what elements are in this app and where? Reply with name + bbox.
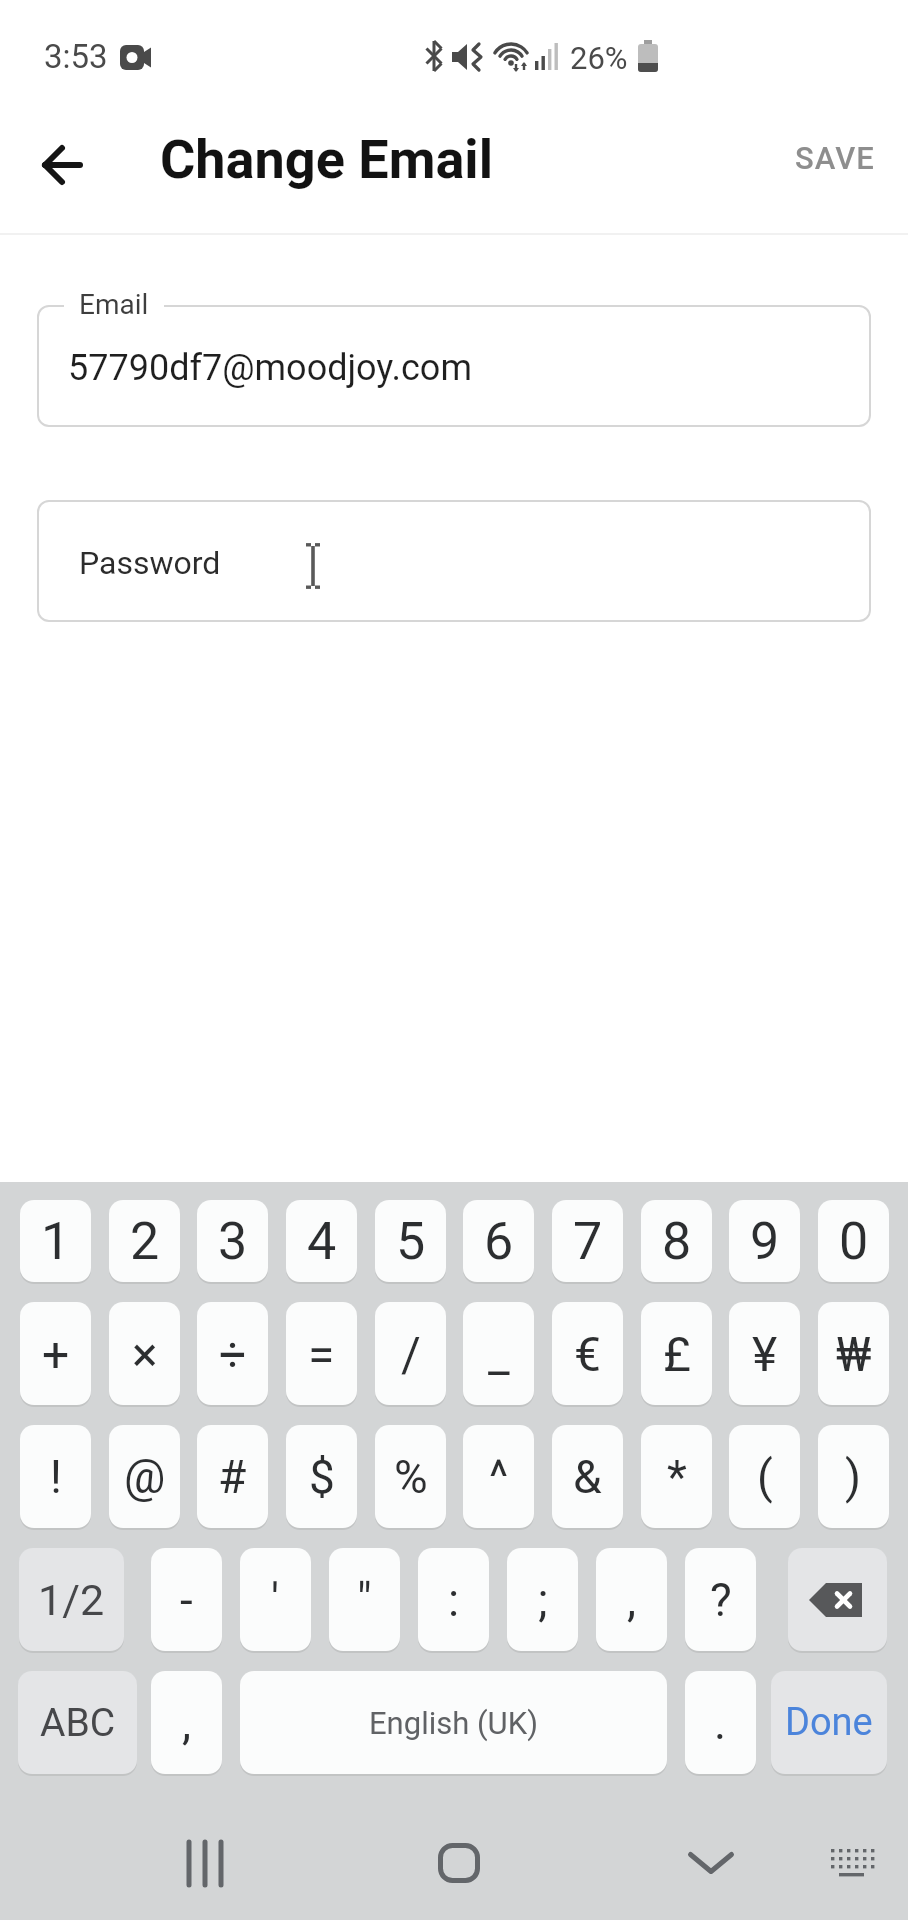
button[interactable] [666, 1830, 756, 1896]
button[interactable]: / [375, 1302, 446, 1405]
button[interactable]: 6 [463, 1200, 534, 1282]
staticText: 5 [396, 1211, 426, 1272]
staticText: # [218, 1450, 247, 1504]
staticText: ) [845, 1450, 862, 1504]
staticText: € [574, 1326, 601, 1382]
staticText: $ [309, 1450, 335, 1504]
button[interactable]: ? [685, 1548, 756, 1651]
button[interactable]: ¥ [729, 1302, 800, 1405]
button[interactable] [788, 1548, 887, 1651]
staticText: , [182, 1696, 192, 1750]
button[interactable]: , [596, 1548, 667, 1651]
staticText: English (UK) [369, 1705, 538, 1741]
button[interactable]: 2 [109, 1200, 180, 1282]
staticText: . [714, 1696, 727, 1750]
staticText: 57790df7@moodjoy.com [68, 347, 472, 389]
button[interactable]: % [375, 1425, 446, 1528]
staticText: Email [79, 288, 149, 321]
staticText: 9 [750, 1211, 780, 1272]
staticText: ( [757, 1450, 773, 1504]
button[interactable]: : [418, 1548, 489, 1651]
staticText: ' [271, 1573, 280, 1627]
staticText: Password [79, 544, 221, 582]
button[interactable]: # [197, 1425, 268, 1528]
staticText: % [394, 1450, 428, 1504]
staticText: ^ [489, 1450, 509, 1504]
button[interactable]: ; [507, 1548, 578, 1651]
staticText: + [42, 1326, 70, 1382]
button[interactable]: 57790df7@moodjoy.com [37, 305, 871, 427]
button[interactable]: ÷ [197, 1302, 268, 1405]
button[interactable]: ' [240, 1548, 311, 1651]
button[interactable]: 7 [552, 1200, 623, 1282]
button[interactable]: " [329, 1548, 400, 1651]
staticText: ! [50, 1450, 62, 1504]
staticText: ¥ [752, 1326, 778, 1382]
button[interactable]: = [286, 1302, 357, 1405]
button[interactable] [816, 1836, 886, 1892]
button[interactable] [30, 133, 94, 197]
staticText: 1/2 [38, 1575, 105, 1625]
staticText: Change Email [160, 128, 493, 191]
button[interactable]: 4 [286, 1200, 357, 1282]
staticText: Done [785, 1700, 873, 1745]
button[interactable]: @ [109, 1425, 180, 1528]
staticText: × [132, 1326, 158, 1382]
staticText: @ [124, 1450, 166, 1504]
button[interactable]: , [151, 1671, 222, 1774]
staticText: _ [488, 1326, 510, 1382]
button[interactable]: 1 [20, 1200, 91, 1282]
button[interactable]: Password [37, 500, 871, 622]
staticText: £ [663, 1326, 691, 1382]
staticText: 0 [839, 1211, 869, 1272]
button[interactable]: * [641, 1425, 712, 1528]
button[interactable]: . [685, 1671, 756, 1774]
button[interactable] [414, 1830, 504, 1896]
staticText: : [448, 1573, 460, 1627]
staticText: , [627, 1573, 637, 1627]
button[interactable]: ^ [463, 1425, 534, 1528]
staticText: 8 [662, 1211, 692, 1272]
staticText: 26% [570, 40, 628, 76]
button[interactable]: _ [463, 1302, 534, 1405]
staticText: * [667, 1450, 687, 1504]
staticText: SAVE [795, 140, 875, 176]
staticText: 7 [573, 1211, 603, 1272]
button[interactable] [160, 1830, 250, 1896]
staticText: - [180, 1573, 193, 1627]
staticText: ? [710, 1573, 732, 1627]
button[interactable]: & [552, 1425, 623, 1528]
staticText: 3:53 [44, 37, 108, 76]
button[interactable]: $ [286, 1425, 357, 1528]
staticText: 1 [41, 1211, 71, 1272]
staticText: 2 [130, 1211, 160, 1272]
staticText: = [308, 1326, 335, 1382]
button[interactable]: ABC [18, 1671, 137, 1774]
button[interactable]: + [20, 1302, 91, 1405]
button[interactable]: ! [20, 1425, 91, 1528]
staticText: 3 [218, 1211, 248, 1272]
button[interactable]: € [552, 1302, 623, 1405]
staticText: 4 [307, 1211, 337, 1272]
staticText: & [573, 1450, 602, 1504]
button[interactable]: × [109, 1302, 180, 1405]
button[interactable]: ) [818, 1425, 889, 1528]
button[interactable]: 9 [729, 1200, 800, 1282]
button[interactable]: ₩ [818, 1302, 889, 1405]
button[interactable]: 5 [375, 1200, 446, 1282]
staticText: 6 [484, 1211, 514, 1272]
staticText: ÷ [219, 1326, 247, 1382]
staticText: ; [538, 1573, 548, 1627]
button[interactable]: £ [641, 1302, 712, 1405]
staticText: ABC [40, 1700, 116, 1746]
button[interactable]: 3 [197, 1200, 268, 1282]
button[interactable]: English (UK) [240, 1671, 667, 1774]
button[interactable]: 0 [818, 1200, 889, 1282]
staticText: ₩ [836, 1326, 872, 1382]
button[interactable]: 1/2 [19, 1548, 124, 1651]
button[interactable]: Done [771, 1671, 887, 1774]
button[interactable]: 8 [641, 1200, 712, 1282]
button[interactable]: - [151, 1548, 222, 1651]
button[interactable]: SAVE [795, 140, 875, 176]
button[interactable]: ( [729, 1425, 800, 1528]
